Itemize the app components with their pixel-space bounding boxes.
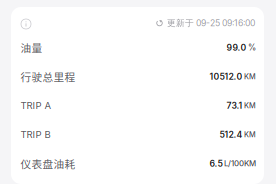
staticText: TRIP B <box>20 129 50 140</box>
staticText: 仪表盘油耗 <box>20 156 75 171</box>
staticText: 10512.0 <box>209 71 242 82</box>
staticText: TRIP A <box>20 100 51 111</box>
staticText: 6.5 <box>209 158 222 169</box>
staticText: 99.0 <box>226 42 246 53</box>
staticText: 行驶总里程 <box>20 69 75 84</box>
staticText: % <box>248 42 256 52</box>
button[interactable]: 更新于 09-25 09:16:00 <box>156 9 264 30</box>
button[interactable]: Info <box>11 9 37 30</box>
staticText: 更新于 09-25 09:16:00 <box>167 17 255 28</box>
staticText: L/100KM <box>224 159 256 168</box>
staticText: 512.4 <box>219 129 242 140</box>
staticText: KM <box>244 130 256 139</box>
staticText: KM <box>244 101 256 110</box>
staticText: 73.1 <box>226 100 242 111</box>
staticText: 油量 <box>20 40 42 55</box>
staticText: KM <box>244 72 256 81</box>
